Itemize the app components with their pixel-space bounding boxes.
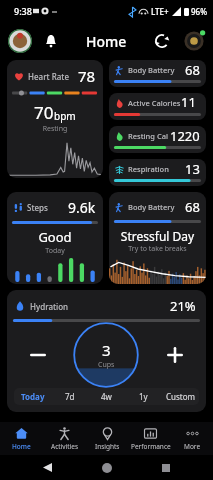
staticText: 21% <box>170 297 196 315</box>
button[interactable]: 7d <box>51 388 88 405</box>
staticText: Home <box>86 32 127 51</box>
staticText: 9.6k <box>68 198 96 217</box>
button[interactable]: 3 <box>68 322 144 388</box>
staticText: 78 <box>78 66 96 86</box>
staticText: LTE+ <box>151 6 169 17</box>
button[interactable]: Hydration <box>15 297 196 315</box>
staticText: Performance <box>131 442 171 451</box>
staticText: Steps <box>27 202 48 213</box>
staticText: 4w <box>101 391 112 402</box>
staticText: 68 <box>185 198 200 216</box>
button[interactable]: Remove cup <box>7 322 68 388</box>
button[interactable]: Back <box>34 455 60 480</box>
staticText: Good <box>7 228 103 246</box>
staticText: 119 <box>181 93 200 113</box>
staticText: Custom <box>166 391 196 402</box>
staticText: Active Calories <box>128 98 181 108</box>
staticText: Resting Cal <box>128 131 168 141</box>
button[interactable]: Body Battery <box>109 60 206 87</box>
staticText: Body Battery <box>128 65 175 75</box>
button[interactable]: Profile <box>8 29 32 53</box>
button[interactable]: Custom <box>162 388 199 405</box>
staticText: Activities <box>51 442 79 451</box>
button[interactable]: Performance <box>129 422 172 455</box>
staticText: Try to take breaks <box>109 244 206 254</box>
button[interactable]: Resting Cal <box>109 126 206 153</box>
staticText: Body Battery <box>128 202 175 212</box>
button[interactable]: Insights <box>86 422 129 455</box>
button[interactable]: Home <box>0 422 43 455</box>
button[interactable]: Add cup <box>144 322 206 388</box>
staticText: 13 <box>185 160 200 178</box>
staticText: 3 <box>102 340 111 360</box>
staticText: 1y <box>139 391 148 402</box>
button[interactable]: Activities <box>43 422 86 455</box>
button[interactable]: More <box>172 422 213 455</box>
button[interactable]: 4w <box>88 388 125 405</box>
button[interactable]: Notifications <box>38 28 64 54</box>
button[interactable]: Today <box>14 388 51 405</box>
staticText: 96% <box>191 6 207 17</box>
staticText: Home <box>12 442 31 451</box>
staticText: More <box>184 442 201 451</box>
staticText: 9:38 <box>14 5 32 17</box>
staticText: 1220 <box>170 127 200 145</box>
button[interactable]: Active Calories <box>109 93 206 120</box>
staticText: 70 <box>34 101 54 124</box>
button[interactable]: Home <box>94 455 120 480</box>
staticText: Respiration <box>128 164 169 174</box>
button[interactable]: Respiration <box>109 159 206 186</box>
staticText: Today <box>7 246 103 256</box>
staticText: Cups <box>98 360 115 370</box>
staticText: Stressful Day <box>109 228 206 244</box>
button[interactable]: 1y <box>125 388 162 405</box>
staticText: Resting <box>7 124 103 134</box>
staticText: bpm <box>54 109 76 123</box>
staticText: Today <box>21 391 45 402</box>
staticText: Heart Rate <box>28 71 69 82</box>
staticText: Hydration <box>30 301 69 312</box>
staticText: Insights <box>95 442 120 451</box>
button[interactable]: Body Battery <box>109 192 206 284</box>
button[interactable]: Heart Rate <box>7 60 103 178</box>
button[interactable]: Recents <box>153 455 179 480</box>
staticText: 7d <box>65 391 75 402</box>
button[interactable]: Sync <box>149 28 175 54</box>
button[interactable]: Watch device <box>182 29 206 53</box>
button[interactable]: Steps <box>7 192 103 284</box>
staticText: 68 <box>185 61 200 79</box>
